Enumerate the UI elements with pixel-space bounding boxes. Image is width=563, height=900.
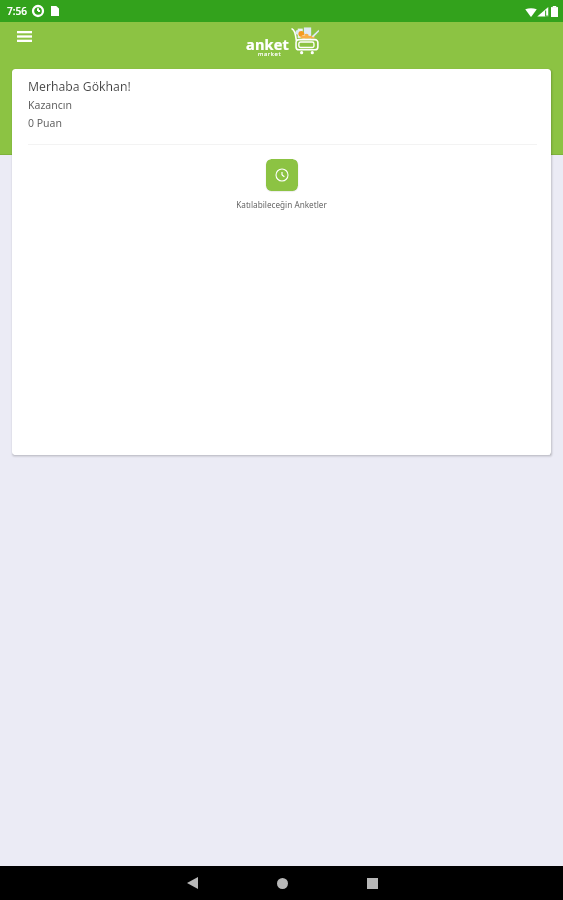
staticText: Merhaba Gökhan!	[28, 78, 131, 95]
button[interactable]: Recents	[346, 866, 398, 900]
staticText: 0 Puan	[28, 116, 62, 130]
staticText: market	[258, 50, 282, 58]
button[interactable]: Katılabileceğin Anketler	[266, 159, 298, 191]
staticText: anket	[246, 34, 290, 54]
staticText: 7:56	[7, 4, 27, 18]
staticText: Katılabileceğin Anketler	[236, 199, 327, 210]
button[interactable]: Home	[256, 866, 308, 900]
staticText: Kazancın	[28, 98, 72, 112]
button[interactable]: Back	[166, 866, 218, 900]
button[interactable]: Menu	[9, 24, 39, 48]
